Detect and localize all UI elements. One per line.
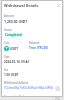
staticText: Withdrawal Address xyxy=(4,81,29,85)
staticText: Status xyxy=(4,28,12,32)
staticText: Network xyxy=(29,41,40,45)
staticText: Withdrawal Details xyxy=(4,3,39,8)
button[interactable]: TQ4ms8Xp7nR2vKdYaLh9BzUcWfGx xyxy=(4,86,60,91)
staticText: 1.00 USDT xyxy=(4,73,19,77)
staticText: TQ4ms8Xp7nR2vKdYaLh9BzUcWfGx xyxy=(4,86,54,90)
staticText: Transaction Hash xyxy=(4,95,26,97)
staticText: Date xyxy=(4,55,10,59)
button[interactable]: Close xyxy=(56,3,61,8)
staticText: Coin xyxy=(4,41,10,45)
staticText: Tron (TRC20) xyxy=(29,46,49,50)
staticText: 2024-03-14 09:42 xyxy=(4,60,29,64)
staticText: Amount xyxy=(4,14,14,18)
staticText: USDT xyxy=(10,47,19,51)
button[interactable]: Copy xyxy=(55,86,60,91)
staticText: Fee xyxy=(4,68,9,72)
staticText: 1,250.00 USDT xyxy=(4,19,28,24)
staticText: Completed xyxy=(5,33,22,37)
button[interactable]: Completed xyxy=(5,33,22,37)
